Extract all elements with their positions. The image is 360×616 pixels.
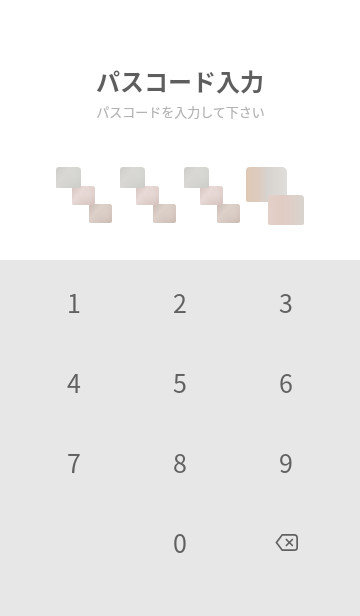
button[interactable]: 1 — [21, 262, 127, 342]
staticText: 1 — [67, 284, 81, 320]
staticText: 9 — [279, 444, 293, 480]
button[interactable]: 0 — [127, 502, 233, 582]
button[interactable]: 5 — [127, 342, 233, 422]
button[interactable]: 3 — [233, 262, 339, 342]
button[interactable]: 7 — [21, 422, 127, 502]
button[interactable]: 2 — [127, 262, 233, 342]
staticText: 0 — [173, 524, 187, 560]
staticText: 3 — [279, 284, 293, 320]
staticText: 6 — [279, 364, 293, 400]
staticText: パスコードを入力して下さい — [96, 102, 265, 121]
staticText: 5 — [173, 364, 187, 400]
staticText: 7 — [67, 444, 81, 480]
staticText: パスコード入力 — [96, 63, 264, 98]
staticText: 2 — [173, 284, 187, 320]
button[interactable]: 4 — [21, 342, 127, 422]
button[interactable]: 9 — [233, 422, 339, 502]
button[interactable]: 8 — [127, 422, 233, 502]
button[interactable]: 6 — [233, 342, 339, 422]
staticText: 8 — [173, 444, 187, 480]
staticText: 4 — [67, 364, 81, 400]
button[interactable]: Backspace — [233, 502, 339, 582]
